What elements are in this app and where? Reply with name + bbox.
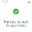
staticText: Thank you so much [3,20,28,24]
staticText: for your order [6,24,26,27]
staticText: ▮▮ [28,0,30,3]
staticText: 9:41 [2,0,9,4]
